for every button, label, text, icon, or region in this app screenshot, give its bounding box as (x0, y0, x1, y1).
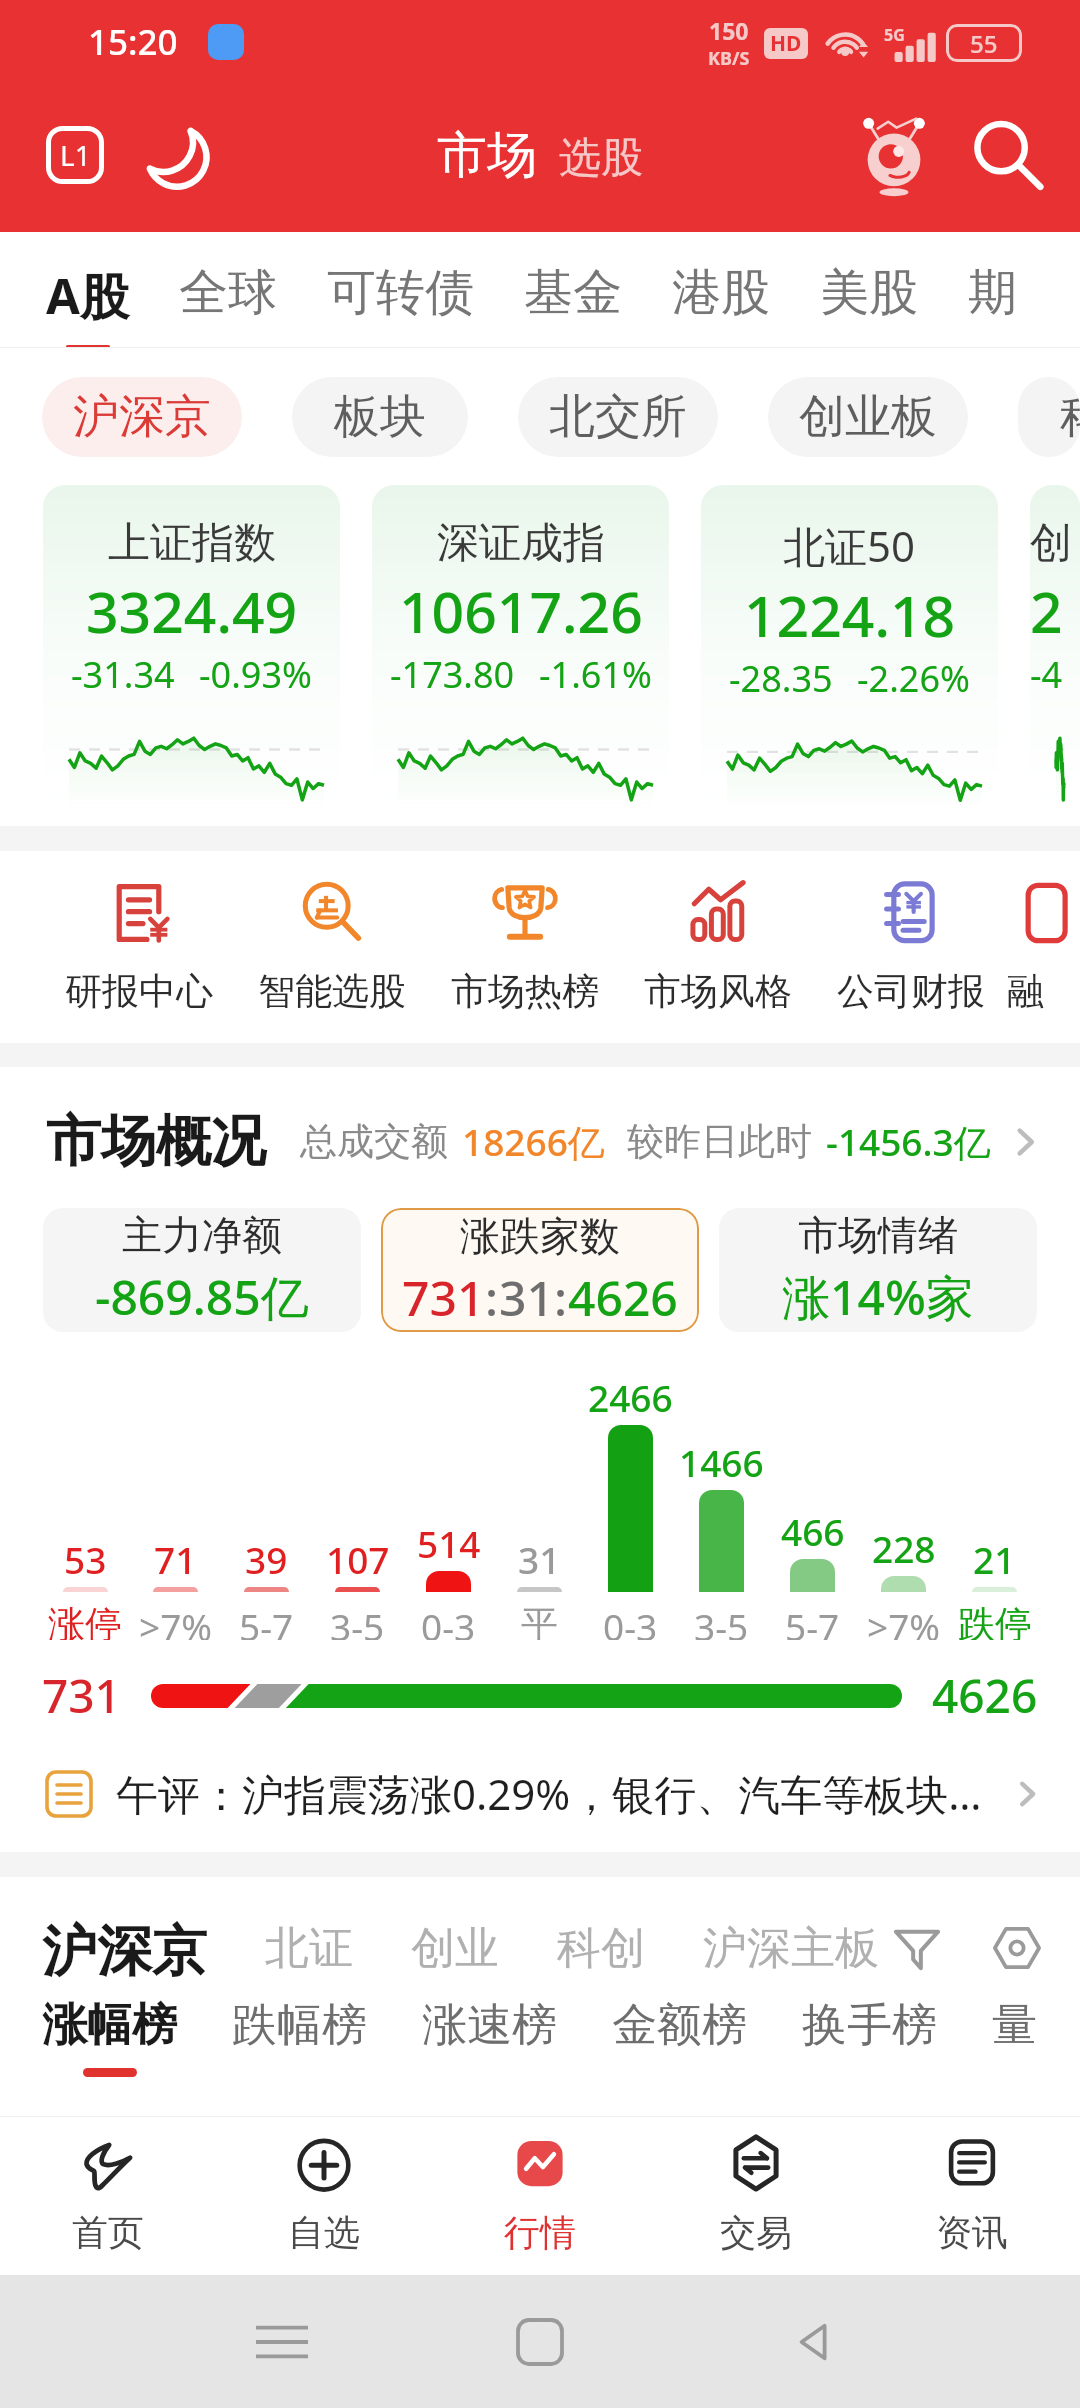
button[interactable]: 美股 (820, 232, 918, 324)
staticText: 3-5 (330, 1601, 385, 1640)
staticText: 资讯 (936, 2210, 1008, 2255)
button[interactable]: 可转债 (327, 232, 474, 324)
button[interactable]: 跌幅榜 (232, 1997, 367, 2068)
button[interactable]: 融资融券 (1007, 880, 1080, 1015)
staticText: -1.61% (539, 650, 652, 699)
staticText: -2.26% (857, 654, 970, 703)
button[interactable]: 主力净额 (43, 1208, 361, 1332)
staticText: 研报中心 (65, 968, 213, 1015)
button[interactable]: 市场风格 (621, 880, 814, 1015)
button[interactable]: 创业板指 (1030, 485, 1080, 810)
staticText: 4626 (568, 1265, 678, 1330)
staticText: 55 (970, 27, 998, 60)
button[interactable]: 金额榜 (612, 1997, 747, 2068)
button[interactable]: 公司财报 (814, 880, 1007, 1015)
staticText: 228 (872, 1523, 936, 1573)
button[interactable]: Settings (988, 1919, 1046, 1977)
staticText: 市场情绪 (798, 1210, 958, 1260)
button[interactable]: 行情 (432, 2117, 648, 2275)
button[interactable]: 港股 (672, 232, 770, 324)
staticText: 美股 (820, 262, 918, 324)
staticText: 5-7 (785, 1601, 840, 1640)
staticText: 深证成指 (437, 517, 605, 570)
button[interactable]: 交易 (648, 2117, 864, 2275)
button[interactable]: 沪深主板 (703, 1921, 879, 1976)
staticText: 21 (973, 1534, 1016, 1584)
button[interactable]: 科创 (557, 1921, 645, 1976)
staticText: 量比榜 (992, 1997, 1025, 2054)
button[interactable]: Quote level L1 (44, 124, 106, 186)
staticText: 150 (709, 15, 749, 46)
staticText: A股 (46, 262, 129, 329)
button[interactable]: 沪深京 (42, 1917, 207, 1979)
staticText: 平 (521, 1601, 558, 1640)
staticText: 全球 (179, 262, 277, 324)
button[interactable]: 涨跌家数 (381, 1208, 699, 1332)
button[interactable]: 涨速榜 (422, 1997, 557, 2068)
staticText: 板块 (334, 388, 426, 446)
button[interactable]: 期货 (968, 232, 1030, 324)
button[interactable]: 北证50 (701, 485, 998, 810)
button[interactable]: 创业 (411, 1921, 499, 1976)
staticText: 交易 (720, 2210, 792, 2255)
button[interactable]: Search (964, 112, 1050, 198)
button[interactable]: 市场概况 (46, 1107, 1044, 1176)
button[interactable]: 全球 (179, 232, 277, 324)
staticText: 5-7 (239, 1601, 294, 1640)
staticText: 5G (884, 24, 905, 46)
staticText: 3324.49 (86, 572, 298, 650)
staticText: 跌幅榜 (232, 1997, 367, 2054)
button[interactable]: 午评：沪指震荡涨0.29%，银行、汽车等板块… (44, 1765, 1044, 1822)
staticText: 3-5 (694, 1601, 749, 1640)
button[interactable]: 深证成指 (372, 485, 669, 810)
button[interactable]: 研报中心 (42, 880, 235, 1015)
button[interactable]: 资讯 (864, 2117, 1080, 2275)
button[interactable]: AI assistant (851, 112, 937, 198)
staticText: 514 (417, 1518, 481, 1568)
staticText: 1224.18 (744, 576, 956, 654)
staticText: -1456.3亿 (826, 1116, 991, 1167)
button[interactable]: 自选 (216, 2117, 432, 2275)
button[interactable]: Back (775, 2302, 855, 2382)
staticText: -0.93% (199, 650, 312, 699)
staticText: >7% (867, 1601, 941, 1640)
button[interactable]: Recent apps (242, 2302, 322, 2382)
button[interactable]: 市场情绪 (719, 1208, 1037, 1332)
staticText: >7% (139, 1601, 213, 1640)
staticText: 选股 (559, 132, 643, 185)
button[interactable]: Night mode (140, 118, 214, 192)
button[interactable]: Filter (888, 1919, 946, 1977)
staticText: 首页 (72, 2210, 144, 2255)
button[interactable]: 创业板 (768, 377, 968, 457)
button[interactable]: 市场热榜 (428, 880, 621, 1015)
button[interactable]: 量比榜 (992, 1997, 1025, 2068)
staticText: 18266亿 (462, 1116, 605, 1167)
staticText: 71 (154, 1534, 197, 1584)
staticText: -173.80 (390, 650, 515, 699)
button[interactable]: 换手榜 (802, 1997, 937, 2068)
staticText: 0-3 (421, 1601, 476, 1640)
staticText: 涨幅榜 (42, 1997, 177, 2054)
button[interactable]: 基金 (524, 232, 622, 324)
staticText: 港股 (672, 262, 770, 324)
staticText: 731 (402, 1265, 485, 1330)
staticText: -869.85亿 (95, 1264, 309, 1330)
button[interactable]: A股 (46, 232, 129, 348)
button[interactable]: 首页 (0, 2117, 216, 2275)
staticText: 跌停 (958, 1601, 1032, 1640)
staticText: HD (770, 29, 802, 58)
button[interactable]: 科创 (1018, 377, 1080, 457)
staticText: 创业板指 (1030, 517, 1080, 570)
button[interactable]: 沪深京 (42, 377, 242, 457)
staticText: 创业板 (799, 388, 937, 446)
button[interactable]: Home (500, 2302, 580, 2382)
staticText: 换手榜 (802, 1997, 937, 2054)
button[interactable]: 智能选股 (235, 880, 428, 1015)
button[interactable]: 北证 (265, 1921, 353, 1976)
staticText: 午评：沪指震荡涨0.29%，银行、汽车等板块… (116, 1765, 1010, 1822)
button[interactable]: 上证指数 (43, 485, 340, 810)
button[interactable]: 涨幅榜 (42, 1997, 177, 2077)
button[interactable]: 北交所 (518, 377, 718, 457)
button[interactable]: 板块 (292, 377, 468, 457)
staticText: 融资融券 (1007, 968, 1080, 1015)
